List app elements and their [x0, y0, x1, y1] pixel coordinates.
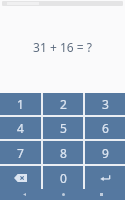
- staticText: 0: [60, 170, 67, 186]
- staticText: 8: [60, 145, 67, 161]
- button[interactable]: 0: [43, 166, 83, 189]
- staticText: 1: [17, 96, 24, 112]
- staticText: 31 + 16 = ?: [33, 39, 92, 55]
- button[interactable]: Back: [9, 189, 39, 200]
- staticText: 3: [102, 96, 109, 112]
- button[interactable]: 4: [0, 117, 41, 139]
- staticText: 5: [60, 120, 67, 136]
- staticText: 2: [60, 96, 67, 112]
- button[interactable]: 2: [43, 93, 83, 115]
- staticText: 4: [17, 120, 24, 136]
- button[interactable]: 8: [43, 141, 83, 164]
- button[interactable]: 6: [85, 117, 125, 139]
- button[interactable]: Home: [48, 189, 78, 200]
- button[interactable]: Backspace: [0, 166, 41, 189]
- button[interactable]: 1: [0, 93, 41, 115]
- button[interactable]: 5: [43, 117, 83, 139]
- staticText: 6: [102, 120, 109, 136]
- button[interactable]: 3: [85, 93, 125, 115]
- staticText: 7: [17, 145, 24, 161]
- button[interactable]: Enter: [85, 166, 125, 189]
- button[interactable]: 7: [0, 141, 41, 164]
- button[interactable]: 9: [85, 141, 125, 164]
- button[interactable]: Recent apps: [86, 189, 116, 200]
- staticText: 9: [102, 145, 109, 161]
